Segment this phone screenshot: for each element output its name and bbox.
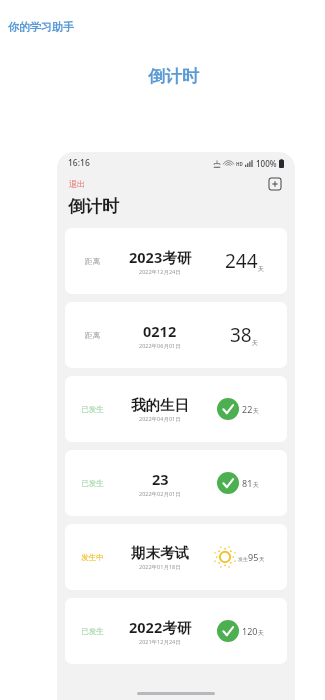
staticText: 退出 <box>69 179 85 189</box>
button[interactable]: 距离 <box>65 302 287 368</box>
staticText: 2022年06月01日 <box>139 342 181 350</box>
staticText: 天 <box>259 556 265 563</box>
staticText: HD <box>236 161 243 167</box>
staticText: 天 <box>258 265 264 273</box>
staticText: 距离 <box>85 331 100 340</box>
staticText: 100% <box>256 158 277 169</box>
staticText: 22 <box>242 403 253 415</box>
staticText: 我的生日 <box>131 396 189 414</box>
button[interactable]: 距离 <box>65 228 287 294</box>
staticText: 95 <box>248 551 259 563</box>
staticText: 38 <box>230 322 252 348</box>
staticText: 距离 <box>85 257 100 266</box>
staticText: 天 <box>253 481 259 489</box>
staticText: 你的学习助手 <box>8 20 74 34</box>
staticText: 2022年12月24日 <box>139 268 181 276</box>
staticText: 2022年04月01日 <box>139 415 181 423</box>
button[interactable]: Add countdown <box>266 175 284 193</box>
staticText: 2022年02月01日 <box>139 490 181 498</box>
button[interactable]: 已发生 <box>65 376 287 442</box>
staticText: 已发生 <box>81 627 104 636</box>
staticText: 天 <box>258 629 264 637</box>
staticText: 244 <box>225 248 258 274</box>
staticText: 已发生 <box>81 405 104 414</box>
button[interactable]: 退出 <box>68 177 86 191</box>
staticText: 天 <box>252 339 258 347</box>
staticText: 期末考试 <box>131 544 189 562</box>
staticText: 发生 <box>238 556 248 562</box>
button[interactable]: 已发生 <box>65 598 287 664</box>
staticText: 23 <box>152 469 169 489</box>
staticText: 16:16 <box>68 157 90 169</box>
staticText: 2022考研 <box>129 617 192 637</box>
button[interactable]: 已发生 <box>65 450 287 516</box>
staticText: 120 <box>242 625 258 637</box>
staticText: 天 <box>253 407 259 415</box>
staticText: 已发生 <box>81 479 104 488</box>
staticText: 发生中 <box>81 553 104 562</box>
staticText: 倒计时 <box>68 196 119 217</box>
staticText: 2022年01月18日 <box>139 563 181 571</box>
staticText: 2021年12月24日 <box>139 638 181 646</box>
staticText: 倒计时 <box>148 66 199 87</box>
staticText: 81 <box>242 477 253 489</box>
button[interactable]: 发生中 <box>65 524 287 590</box>
staticText: 2023考研 <box>129 247 192 267</box>
staticText: 0212 <box>143 321 177 341</box>
